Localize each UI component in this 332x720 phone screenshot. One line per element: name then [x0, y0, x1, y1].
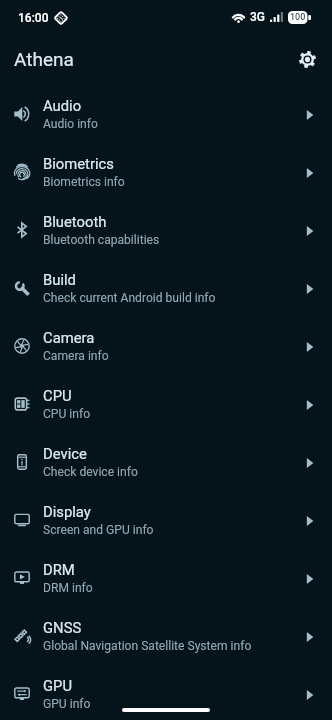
button[interactable]: GNSS [0, 612, 332, 670]
staticText: Screen and GPU info [43, 523, 154, 537]
staticText: GPU info [43, 697, 91, 711]
staticText: Biometrics info [43, 175, 125, 189]
staticText: Athena [14, 48, 74, 70]
button[interactable]: Bluetooth [0, 206, 332, 264]
staticText: 100 [290, 12, 306, 23]
staticText: Camera [43, 329, 95, 346]
staticText: CPU [43, 387, 72, 404]
staticText: Audio [43, 97, 82, 114]
staticText: Camera info [43, 349, 109, 363]
staticText: Global Navigation Satellite System info [43, 639, 252, 653]
staticText: Build [43, 271, 76, 288]
staticText: DRM [43, 561, 75, 578]
staticText: Bluetooth capabilities [43, 233, 160, 247]
staticText: DRM info [43, 581, 93, 595]
staticText: CPU info [43, 407, 91, 421]
button[interactable]: Audio [0, 90, 332, 148]
staticText: 16:00 [18, 11, 49, 25]
staticText: Check current Android build info [43, 291, 216, 305]
staticText: Device [43, 445, 87, 462]
staticText: Audio info [43, 117, 98, 131]
button[interactable]: Biometrics [0, 148, 332, 206]
staticText: Bluetooth [43, 213, 107, 230]
button[interactable]: Display [0, 496, 332, 554]
button[interactable]: Build [0, 264, 332, 322]
button[interactable]: Settings [287, 39, 327, 79]
staticText: Display [43, 503, 91, 520]
staticText: Check device info [43, 465, 138, 479]
button[interactable]: DRM [0, 554, 332, 612]
button[interactable]: Camera [0, 322, 332, 380]
staticText: 3G [250, 10, 265, 24]
button[interactable]: CPU [0, 380, 332, 438]
button[interactable]: Device [0, 438, 332, 496]
staticText: Biometrics [43, 155, 114, 172]
button[interactable]: GPU [0, 670, 332, 720]
staticText: GNSS [43, 619, 82, 636]
staticText: GPU [43, 677, 73, 694]
